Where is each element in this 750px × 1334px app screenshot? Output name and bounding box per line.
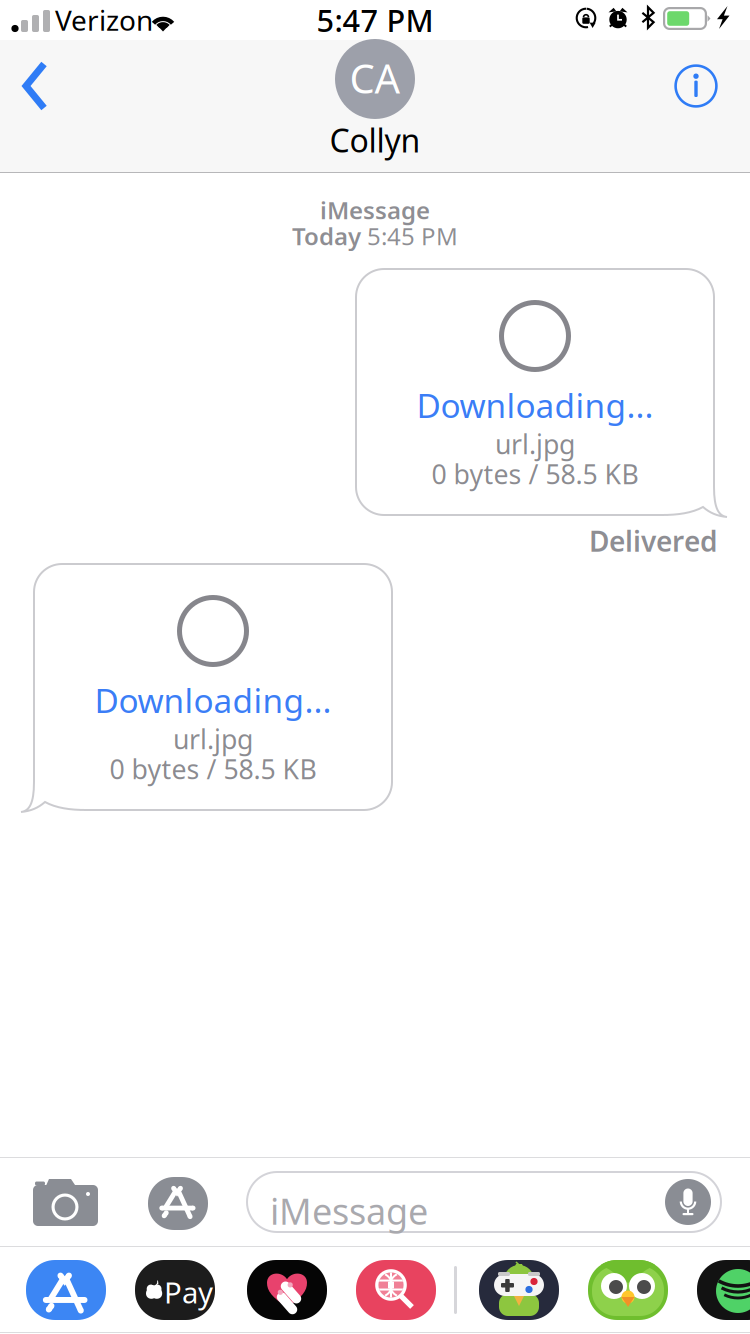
- staticText: Collyn: [329, 119, 420, 161]
- button[interactable]: Game: [464, 1247, 594, 1333]
- staticText: Downloading...: [416, 383, 653, 427]
- staticText: 5:47 PM: [316, 0, 433, 40]
- staticText: url.jpg: [173, 721, 253, 757]
- staticText: iMessage: [320, 194, 430, 226]
- staticText: Delivered: [589, 522, 718, 560]
- staticText: Verizon: [55, 1, 153, 39]
- staticText: CA: [349, 51, 400, 104]
- button[interactable]: Camera: [0, 1158, 100, 1246]
- button[interactable]: Spotify: [682, 1247, 750, 1333]
- button[interactable]: Apple Pay: [120, 1247, 250, 1333]
- staticText: Pay: [164, 1272, 213, 1311]
- button[interactable]: Apps: [140, 1158, 226, 1246]
- button[interactable]: Images: [341, 1247, 471, 1333]
- button[interactable]: App Store: [11, 1247, 141, 1333]
- staticText: 0 bytes / 58.5 KB: [109, 751, 316, 787]
- button[interactable]: CA: [265, 39, 485, 161]
- staticText: Today 5:45 PM: [292, 220, 458, 252]
- staticText: iMessage: [270, 1187, 428, 1235]
- staticText: Downloading...: [94, 678, 331, 722]
- button[interactable]: iMessage: [246, 1171, 722, 1233]
- staticText: url.jpg: [495, 426, 575, 462]
- button[interactable]: Details: [650, 40, 730, 150]
- button[interactable]: Duolingo: [573, 1247, 703, 1333]
- button[interactable]: Back: [0, 40, 74, 150]
- staticText: 0 bytes / 58.5 KB: [431, 456, 638, 492]
- button[interactable]: Health: [232, 1247, 362, 1333]
